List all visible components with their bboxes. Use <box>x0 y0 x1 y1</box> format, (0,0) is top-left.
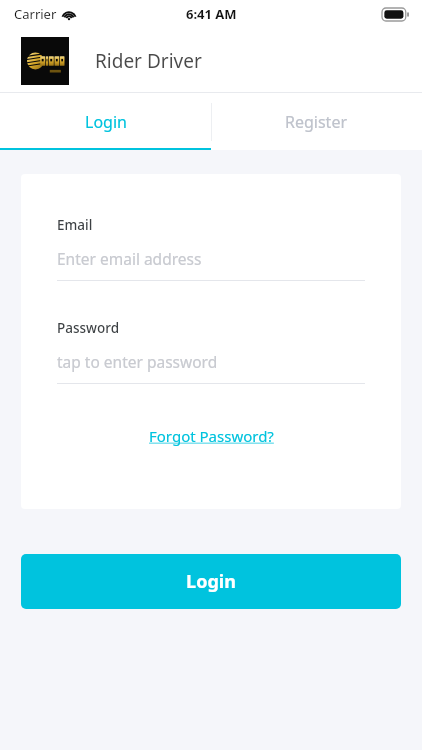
button[interactable]: Forgot Password? <box>143 422 280 450</box>
staticText: Register <box>285 111 348 133</box>
staticText: tap to enter password <box>57 351 218 372</box>
staticText: Password <box>57 319 120 337</box>
button[interactable]: Login <box>21 554 401 609</box>
staticText: Login <box>85 111 127 133</box>
button[interactable]: Enter email address <box>57 248 365 269</box>
staticText: 6:41 AM <box>186 5 237 23</box>
staticText: Enter email address <box>57 248 202 269</box>
staticText: Rider Driver <box>95 48 202 74</box>
button[interactable]: Login <box>0 93 211 150</box>
button[interactable]: tap to enter password <box>57 351 365 372</box>
staticText: Carrier <box>14 5 57 23</box>
staticText: Email <box>57 216 93 234</box>
button[interactable]: Register <box>211 93 422 150</box>
staticText: Login <box>186 569 236 594</box>
staticText: Forgot Password? <box>149 426 274 446</box>
